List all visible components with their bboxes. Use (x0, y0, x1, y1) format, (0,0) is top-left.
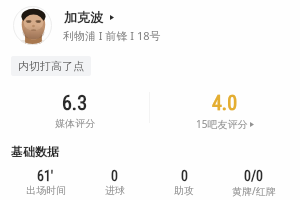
staticText: 4.0 (212, 91, 238, 114)
staticText: 助攻 (174, 184, 194, 197)
button[interactable]: 61' (11, 168, 80, 197)
staticText: 内切打高了点 (18, 59, 84, 73)
staticText: 61' (37, 168, 54, 184)
staticText: 0 (111, 168, 118, 184)
staticText: 15吧友评分 (196, 117, 248, 131)
staticText: 0/0 (244, 168, 264, 184)
button[interactable]: 内切打高了点 (11, 56, 91, 76)
button[interactable]: Player photo (13, 6, 52, 45)
button[interactable]: 0 (149, 168, 219, 197)
button[interactable]: 0/0 (219, 168, 289, 198)
staticText: 0 (181, 168, 188, 184)
staticText: 加克波 (64, 9, 103, 25)
staticText: 出场时间 (26, 184, 66, 197)
staticText: 黄牌/红牌 (232, 184, 276, 198)
button[interactable]: 6.3 (0, 91, 150, 130)
staticText: 6.3 (62, 91, 88, 114)
button[interactable]: 4.0 (150, 91, 300, 131)
staticText: 基础数据 (11, 144, 59, 159)
staticText: 利物浦 I 前锋 I 18号 (63, 28, 161, 43)
staticText: 进球 (105, 184, 125, 197)
staticText: 媒体评分 (55, 117, 95, 130)
button[interactable]: 0 (80, 168, 149, 197)
